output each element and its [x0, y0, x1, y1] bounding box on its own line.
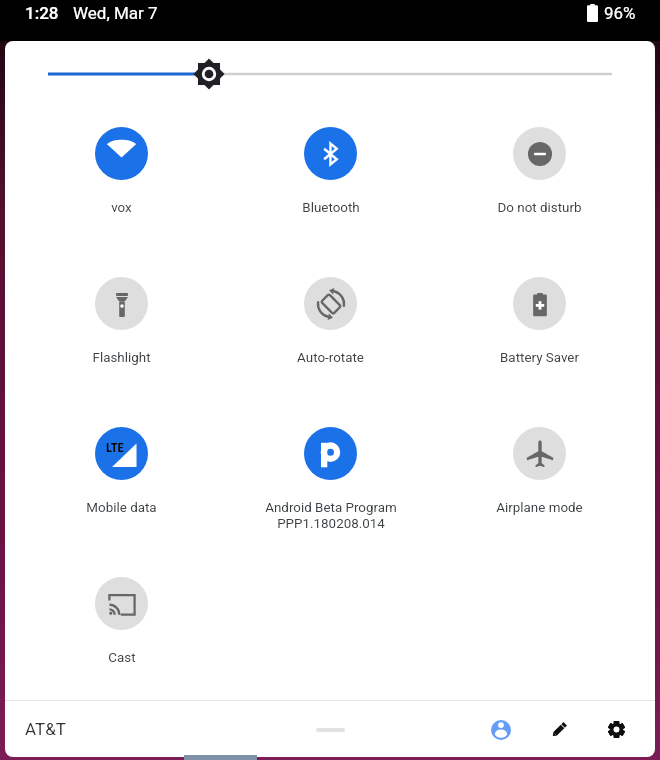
- button[interactable]: Airplane mode: [435, 427, 644, 516]
- button[interactable]: Account: [481, 710, 521, 750]
- button[interactable]: Wi-Fi vox: [17, 127, 226, 216]
- button[interactable]: Brightness: [194, 59, 224, 89]
- staticText: Flashlight: [92, 350, 151, 366]
- button[interactable]: Bluetooth: [226, 127, 435, 216]
- staticText: Airplane mode: [496, 500, 583, 516]
- staticText: Wed, Mar 7: [73, 3, 158, 23]
- staticText: 1:28: [25, 3, 59, 23]
- staticText: Auto-rotate: [297, 350, 364, 366]
- button[interactable]: Edit: [539, 709, 579, 749]
- staticText: LTE: [106, 440, 124, 455]
- button[interactable]: Cast: [17, 577, 226, 666]
- staticText: Do not disturb: [497, 200, 582, 216]
- button[interactable]: Android Beta Program: [226, 427, 435, 532]
- button[interactable]: Do not disturb: [435, 127, 644, 216]
- button[interactable]: Settings: [596, 709, 636, 749]
- staticText: Mobile data: [86, 500, 157, 516]
- staticText: AT&T: [25, 719, 66, 739]
- staticText: Cast: [108, 650, 136, 666]
- button[interactable]: Auto-rotate: [226, 277, 435, 366]
- staticText: 96%: [604, 3, 636, 23]
- staticText: vox: [111, 200, 132, 216]
- button[interactable]: Flashlight: [17, 277, 226, 366]
- button[interactable]: Mobile data: [17, 427, 226, 516]
- staticText: Battery Saver: [500, 350, 579, 366]
- button[interactable]: Battery Saver: [435, 277, 644, 366]
- staticText: Bluetooth: [302, 200, 360, 216]
- staticText: Android Beta Program: [265, 500, 397, 516]
- staticText: PPP1.180208.014: [277, 516, 385, 532]
